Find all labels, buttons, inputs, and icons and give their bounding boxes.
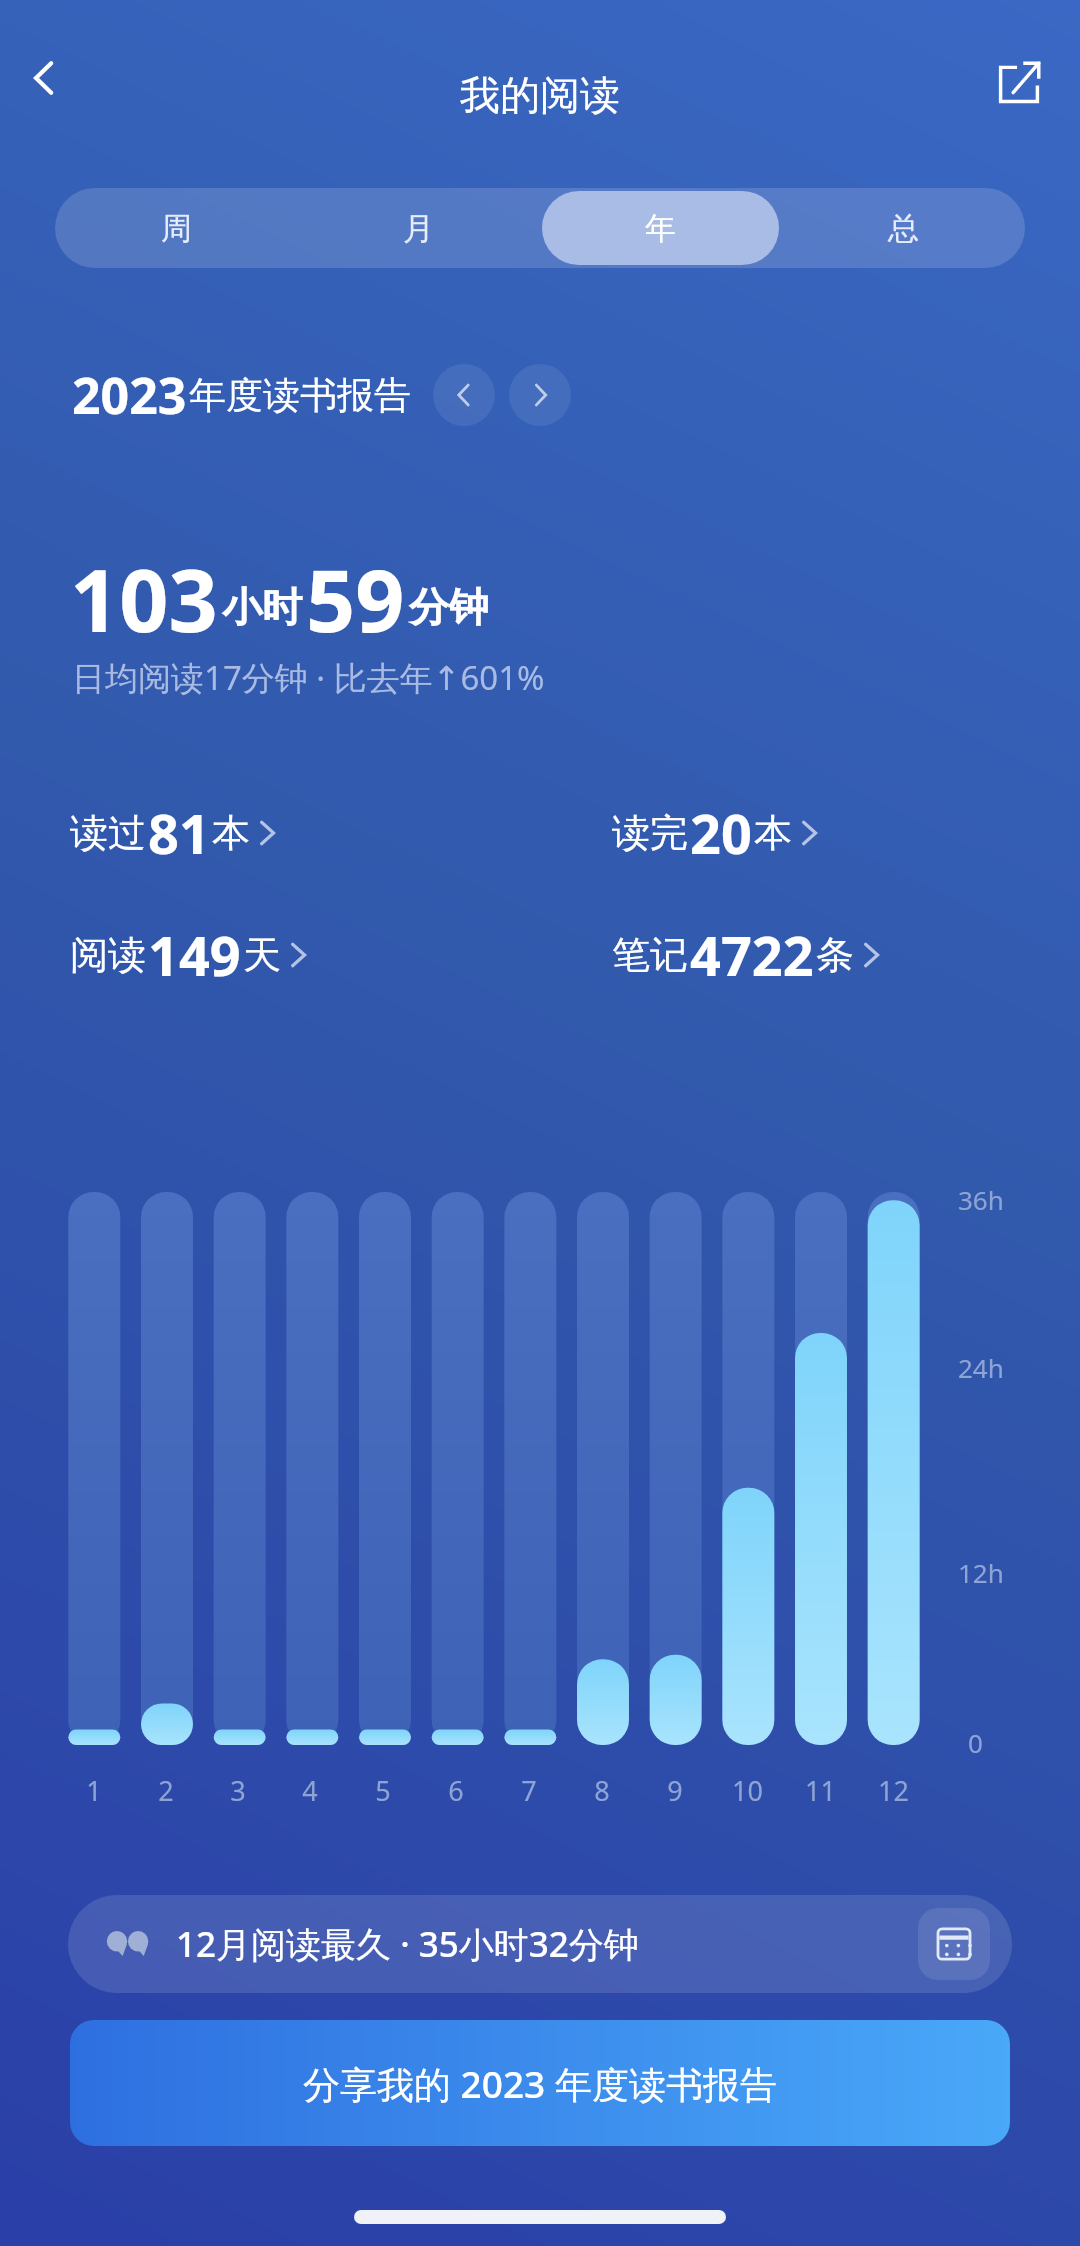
staticText: 24h <box>958 1350 1004 1385</box>
button[interactable]: 总 <box>785 191 1022 265</box>
staticText: 本 <box>212 809 250 857</box>
staticText: 6 <box>448 1772 464 1809</box>
staticText: 年 <box>645 209 676 248</box>
staticText: 总 <box>888 209 919 248</box>
staticText: 分享我的 2023 年度读书报告 <box>303 2058 777 2109</box>
staticText: 4722 <box>690 918 814 992</box>
staticText: 日均阅读17分钟 · 比去年↑601% <box>72 655 545 700</box>
staticText: 分钟 <box>409 582 489 632</box>
staticText: 8 <box>594 1772 610 1809</box>
staticText: 36h <box>958 1182 1004 1217</box>
staticText: 9 <box>667 1772 683 1809</box>
staticText: 12月阅读最久 · 35小时32分钟 <box>176 1920 639 1968</box>
staticText: 读完 <box>612 809 688 857</box>
staticText: 我的阅读 <box>0 70 1080 120</box>
button[interactable]: Calendar <box>918 1908 990 1980</box>
staticText: 7 <box>521 1772 537 1809</box>
staticText: 59 <box>306 540 405 640</box>
button[interactable]: 分享我的 2023 年度读书报告 <box>70 2020 1010 2146</box>
staticText: 笔记 <box>612 931 688 979</box>
staticText: 11 <box>805 1772 836 1809</box>
staticText: 天 <box>243 931 281 979</box>
button[interactable]: 阅读 <box>70 912 309 998</box>
staticText: 2 <box>158 1772 174 1809</box>
staticText: 149 <box>148 918 241 992</box>
staticText: 条 <box>816 931 854 979</box>
staticText: 阅读 <box>70 931 146 979</box>
staticText: 81 <box>148 796 210 870</box>
button[interactable]: Next year <box>509 364 571 426</box>
button[interactable]: Share <box>982 46 1056 120</box>
button[interactable]: 周 <box>58 191 294 265</box>
staticText: 2023 <box>72 361 187 429</box>
staticText: 周 <box>161 209 192 248</box>
staticText: 小时 <box>222 582 302 632</box>
button[interactable]: 月 <box>300 191 536 265</box>
staticText: 月 <box>403 209 434 248</box>
button[interactable]: 读过 <box>70 790 278 876</box>
staticText: 103 <box>70 540 218 640</box>
button[interactable]: 12月阅读最久 · 35小时32分钟 <box>68 1895 1012 1993</box>
staticText: 3 <box>230 1772 246 1809</box>
staticText: 本 <box>754 809 792 857</box>
button[interactable]: 笔记 <box>612 912 882 998</box>
button[interactable]: 读完 <box>612 790 820 876</box>
staticText: 20 <box>690 796 752 870</box>
staticText: 读过 <box>70 809 146 857</box>
button[interactable]: Previous year <box>433 364 495 426</box>
staticText: 年度读书报告 <box>189 372 411 419</box>
staticText: 5 <box>375 1772 391 1809</box>
button[interactable]: Back <box>8 42 80 114</box>
staticText: 12 <box>878 1772 909 1809</box>
staticText: 4 <box>302 1772 318 1809</box>
staticText: 12h <box>958 1555 1004 1590</box>
staticText: 0 <box>968 1725 983 1760</box>
staticText: 1 <box>86 1772 102 1809</box>
button[interactable]: 年 <box>542 191 779 265</box>
staticText: 10 <box>732 1772 763 1809</box>
